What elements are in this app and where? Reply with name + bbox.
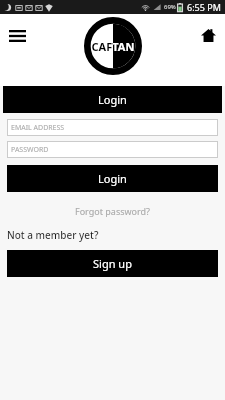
- staticText: Login: [98, 171, 127, 186]
- button[interactable]: EMAIL ADDRESS: [7, 119, 218, 136]
- button[interactable]: Login: [7, 165, 218, 192]
- button[interactable]: Forgot password?: [0, 203, 225, 219]
- button[interactable]: PASSWORD: [7, 141, 218, 158]
- staticText: 69%: [164, 3, 176, 11]
- staticText: 6:55 PM: [187, 1, 221, 13]
- staticText: Forgot password?: [75, 205, 151, 217]
- button[interactable]: Login: [3, 86, 222, 113]
- button[interactable]: Menu: [4, 23, 30, 49]
- button[interactable]: Home: [196, 23, 220, 47]
- button[interactable]: Sign up: [7, 250, 218, 277]
- staticText: Login: [98, 92, 127, 107]
- staticText: EMAIL ADDRESS: [11, 123, 65, 133]
- staticText: PASSWORD: [11, 145, 49, 155]
- staticText: Sign up: [93, 256, 132, 271]
- staticText: Not a member yet?: [7, 228, 99, 242]
